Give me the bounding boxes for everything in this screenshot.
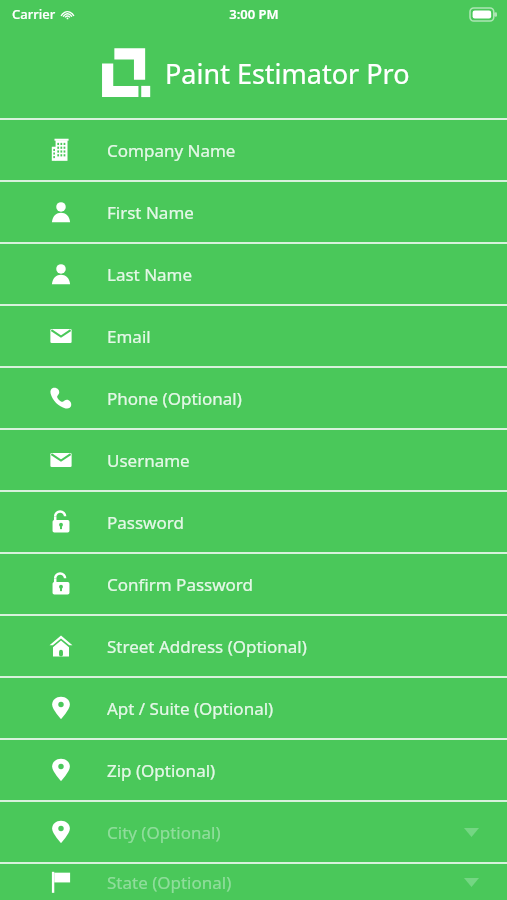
staticText: First Name bbox=[107, 201, 194, 224]
button[interactable]: Confirm Password bbox=[0, 554, 507, 614]
button[interactable]: Zip (Optional) bbox=[0, 740, 507, 800]
staticText: City (Optional) bbox=[107, 821, 221, 844]
staticText: Street Address (Optional) bbox=[107, 635, 307, 658]
button[interactable]: City (Optional) bbox=[0, 802, 507, 862]
staticText: Password bbox=[107, 511, 184, 534]
button[interactable]: Apt / Suite (Optional) bbox=[0, 678, 507, 738]
staticText: Apt / Suite (Optional) bbox=[107, 697, 274, 720]
staticText: 3:00 PM bbox=[229, 5, 279, 23]
staticText: State (Optional) bbox=[107, 871, 232, 894]
staticText: Email bbox=[107, 325, 151, 348]
button[interactable]: Username bbox=[0, 430, 507, 490]
staticText: Last Name bbox=[107, 263, 193, 286]
other: Open City (Optional) picker bbox=[464, 828, 479, 837]
button[interactable]: Last Name bbox=[0, 244, 507, 304]
staticText: Company Name bbox=[107, 139, 236, 162]
button[interactable]: Email bbox=[0, 306, 507, 366]
staticText: Carrier bbox=[12, 5, 56, 23]
button[interactable]: State (Optional) bbox=[0, 864, 507, 900]
button[interactable]: Company Name bbox=[0, 120, 507, 180]
button[interactable]: First Name bbox=[0, 182, 507, 242]
button[interactable]: Password bbox=[0, 492, 507, 552]
button[interactable]: Street Address (Optional) bbox=[0, 616, 507, 676]
other: Open State (Optional) picker bbox=[464, 878, 479, 887]
button[interactable]: Phone (Optional) bbox=[0, 368, 507, 428]
staticText: Phone (Optional) bbox=[107, 387, 242, 410]
staticText: Username bbox=[107, 449, 190, 472]
staticText: Confirm Password bbox=[107, 573, 253, 596]
staticText: Paint Estimator Pro bbox=[165, 55, 410, 92]
staticText: Zip (Optional) bbox=[107, 759, 216, 782]
